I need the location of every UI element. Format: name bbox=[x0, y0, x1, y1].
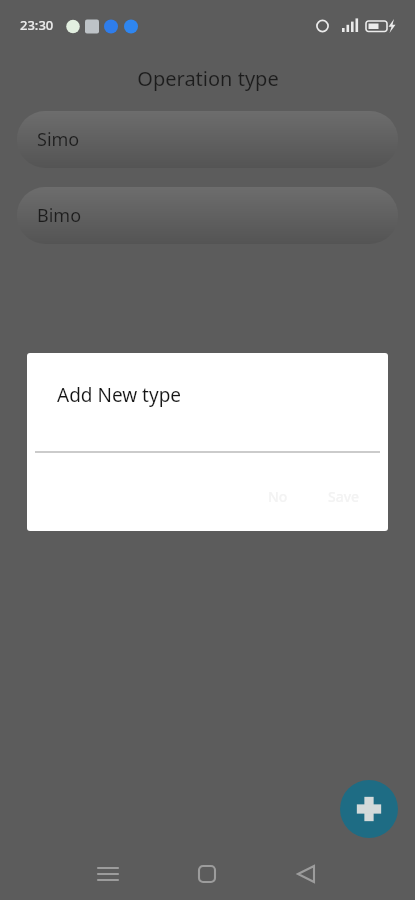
staticText: Bimo bbox=[37, 203, 82, 228]
staticText: Add New type bbox=[57, 382, 182, 408]
staticText: No bbox=[268, 487, 288, 506]
button[interactable]: Recent apps bbox=[84, 848, 132, 900]
staticText: Operation type bbox=[137, 65, 279, 92]
staticText: Save bbox=[328, 487, 360, 506]
button[interactable]: Simo bbox=[17, 111, 398, 168]
button[interactable]: Add new operation type bbox=[340, 780, 398, 838]
button[interactable]: Bimo bbox=[17, 187, 398, 244]
staticText: Simo bbox=[37, 127, 80, 152]
staticText: 23:30 bbox=[20, 16, 54, 34]
button[interactable]: Back bbox=[282, 848, 330, 900]
button[interactable]: Home bbox=[183, 848, 231, 900]
